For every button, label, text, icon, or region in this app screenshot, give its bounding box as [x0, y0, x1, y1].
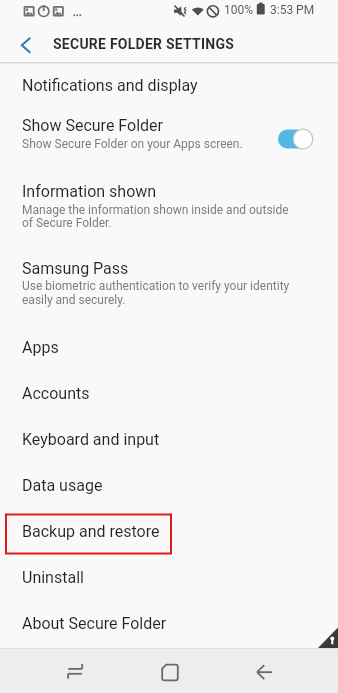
staticText: Accounts: [22, 384, 90, 403]
staticText: 3:53 PM: [270, 3, 315, 17]
staticText: 100%: [224, 3, 254, 17]
staticText: of Secure Folder.: [22, 216, 112, 230]
button[interactable]: [0, 109, 338, 167]
staticText: Notifications and display: [22, 76, 198, 95]
button[interactable]: [0, 326, 338, 372]
button[interactable]: [124, 650, 214, 693]
button[interactable]: [0, 510, 338, 556]
staticText: Data usage: [22, 476, 103, 495]
staticText: easily and securely.: [22, 293, 126, 307]
staticText: Samsung Pass: [22, 259, 129, 278]
staticText: Uninstall: [22, 568, 84, 587]
button[interactable]: [272, 123, 320, 155]
button[interactable]: [0, 556, 338, 602]
staticText: Keyboard and input: [22, 430, 160, 449]
staticText: Manage the information shown inside and …: [22, 203, 289, 217]
staticText: SECURE FOLDER SETTINGS: [53, 36, 235, 52]
button[interactable]: [0, 372, 338, 418]
staticText: Backup and restore: [22, 522, 160, 541]
button[interactable]: [30, 650, 120, 693]
staticText: Show Secure Folder on your Apps screen.: [22, 137, 243, 151]
button[interactable]: [0, 26, 48, 62]
button[interactable]: [0, 602, 338, 648]
staticText: Use biometric authentication to verify y…: [22, 279, 290, 293]
staticText: Apps: [22, 338, 59, 357]
button[interactable]: [0, 237, 338, 326]
button[interactable]: [0, 464, 338, 510]
button[interactable]: [218, 650, 308, 693]
button[interactable]: [0, 63, 338, 109]
button[interactable]: [0, 418, 338, 464]
staticText: Information shown: [22, 182, 157, 201]
staticText: Show Secure Folder: [22, 116, 163, 135]
button[interactable]: [0, 167, 338, 237]
staticText: About Secure Folder: [22, 614, 167, 633]
